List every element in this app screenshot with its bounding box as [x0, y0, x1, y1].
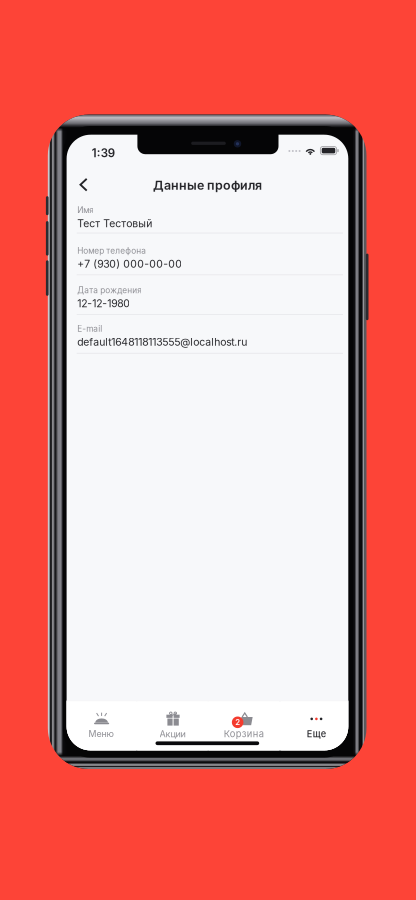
staticText: 1:39 — [92, 146, 115, 160]
button[interactable]: 2 — [67, 135, 348, 750]
staticText: +7 (930) 000-00-00 — [77, 258, 182, 270]
staticText: Корзина — [224, 728, 264, 740]
staticText: Данные профиля — [153, 178, 262, 193]
staticText: Меню — [88, 729, 113, 739]
staticText: Акции — [159, 728, 185, 739]
staticText: 12-12-1980 — [77, 297, 130, 310]
staticText: Тест Тестовый — [77, 217, 152, 230]
staticText: 2 — [235, 718, 240, 727]
staticText: Еще — [307, 728, 326, 739]
staticText: Имя — [77, 205, 94, 215]
button[interactable]: Меню — [67, 135, 348, 750]
button[interactable]: Акции — [67, 135, 348, 750]
button[interactable]: Back — [67, 135, 348, 750]
staticText: default1648118113555@localhost.ru — [77, 336, 247, 348]
button[interactable]: Еще — [67, 135, 348, 750]
staticText: Номер телефона — [77, 246, 146, 256]
staticText: Дата рождения — [77, 285, 142, 295]
staticText: E-mail — [77, 324, 102, 334]
